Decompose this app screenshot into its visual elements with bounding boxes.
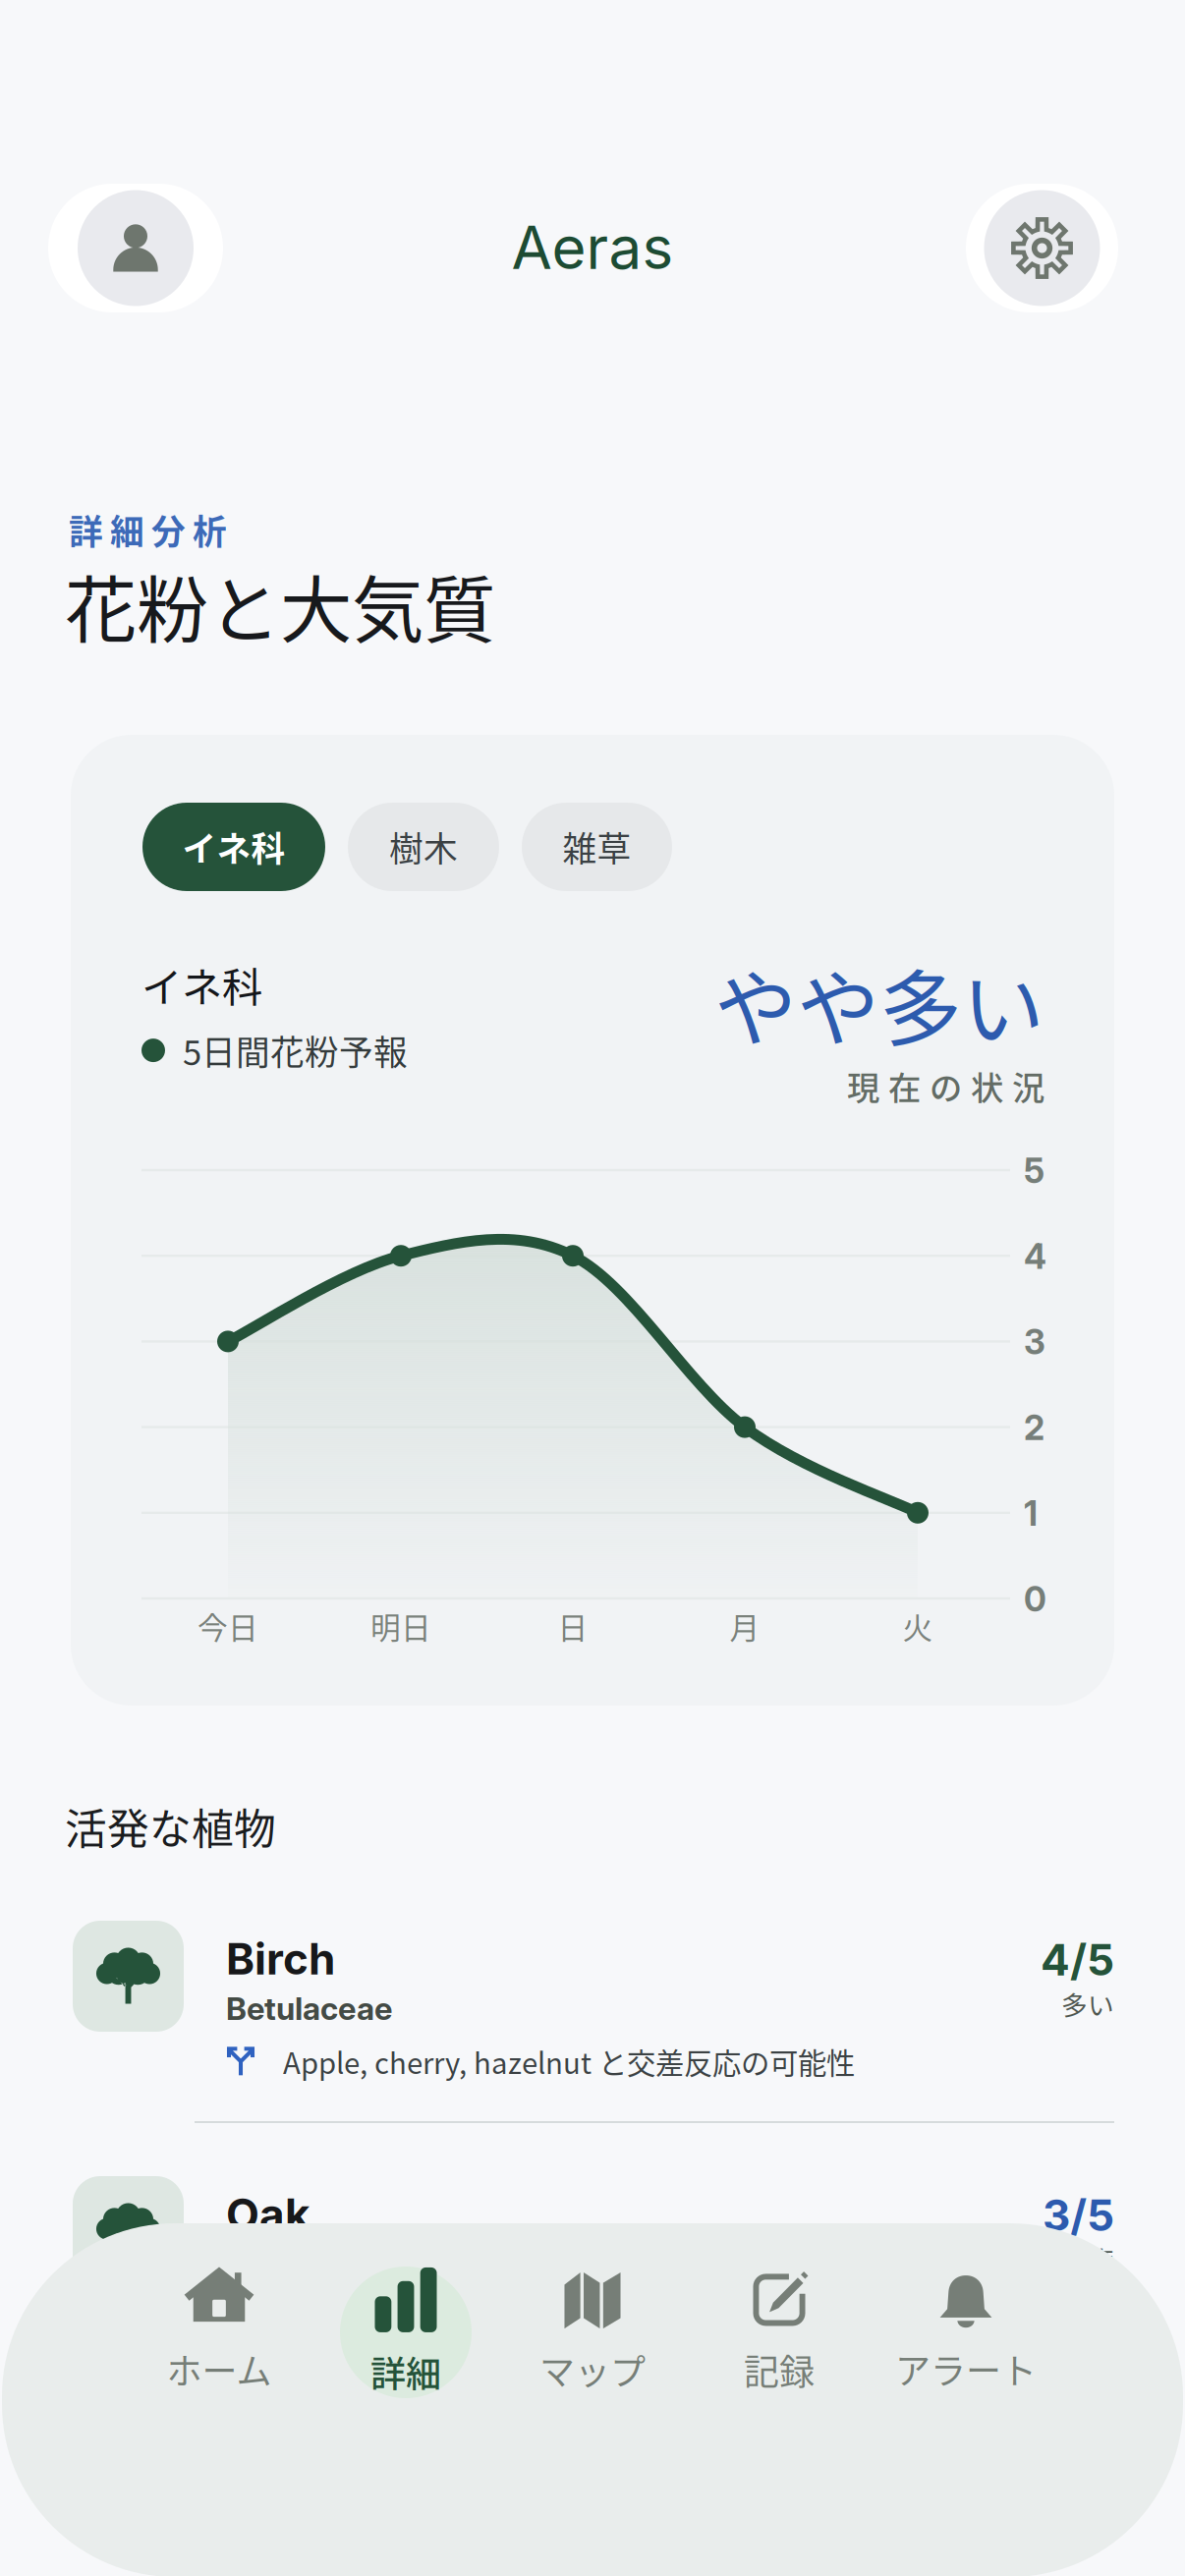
staticText: 多い [1061, 1985, 1114, 2022]
button[interactable]: Profile [48, 184, 223, 312]
staticText: 今日 [197, 1604, 258, 1648]
staticText: 日 [558, 1604, 588, 1648]
staticText: 1 [1024, 1493, 1038, 1534]
button[interactable]: 樹木 [348, 803, 499, 891]
staticText: 記録 [744, 2344, 815, 2395]
button[interactable]: Settings [966, 184, 1118, 312]
staticText: 5 [1024, 1150, 1044, 1191]
button[interactable]: 雑草 [522, 803, 672, 891]
staticText: 活発な植物 [65, 1796, 276, 1857]
staticText: Oak [226, 2188, 310, 2240]
staticText: やや多い [714, 944, 1044, 1063]
staticText: マップ [539, 2344, 646, 2395]
staticText: 詳細 [370, 2346, 441, 2397]
staticText: 4 [1024, 1236, 1046, 1277]
staticText: 3 [1024, 1321, 1045, 1363]
staticText: ホーム [167, 2343, 272, 2395]
staticText: 4/5 [1041, 1933, 1114, 1986]
staticText: 樹木 [389, 822, 458, 872]
staticText: アラート [895, 2343, 1037, 2394]
button[interactable]: ホーム [126, 2259, 312, 2406]
staticText: Apple, cherry, hazelnut と交差反応の可能性 [283, 2041, 855, 2082]
staticText: 現在の状況 [847, 1062, 1044, 1109]
staticText: 2 [1024, 1407, 1044, 1448]
button[interactable]: マップ [499, 2259, 686, 2406]
staticText: 明日 [370, 1604, 431, 1648]
staticText: Aeras [511, 212, 674, 283]
staticText: 3/5 [1043, 2189, 1114, 2241]
staticText: 火 [903, 1604, 933, 1648]
button[interactable]: 詳細 [312, 2259, 499, 2406]
staticText: Birch [226, 1932, 335, 1985]
staticText: Fagaceae [226, 2245, 370, 2283]
staticText: Betulaceae [226, 1989, 392, 2027]
staticText: イネ科 [141, 955, 262, 1014]
button[interactable]: Oak [0, 2176, 1185, 2382]
button[interactable]: アラート [873, 2259, 1059, 2406]
staticText: 月 [730, 1604, 760, 1648]
staticText: イネ科 [182, 822, 285, 872]
staticText: 花粉と大気質 [65, 553, 495, 657]
staticText: 5日間花粉予報 [183, 1026, 408, 1075]
staticText: 雑草 [563, 822, 631, 872]
staticText: 詳細分析 [69, 505, 227, 554]
button[interactable]: Birch [0, 1921, 1185, 2127]
button[interactable]: イネ科 [142, 803, 325, 891]
staticText: 0 [1024, 1578, 1046, 1620]
button[interactable]: 記録 [686, 2259, 873, 2406]
staticText: 中程度 [1035, 2240, 1114, 2278]
